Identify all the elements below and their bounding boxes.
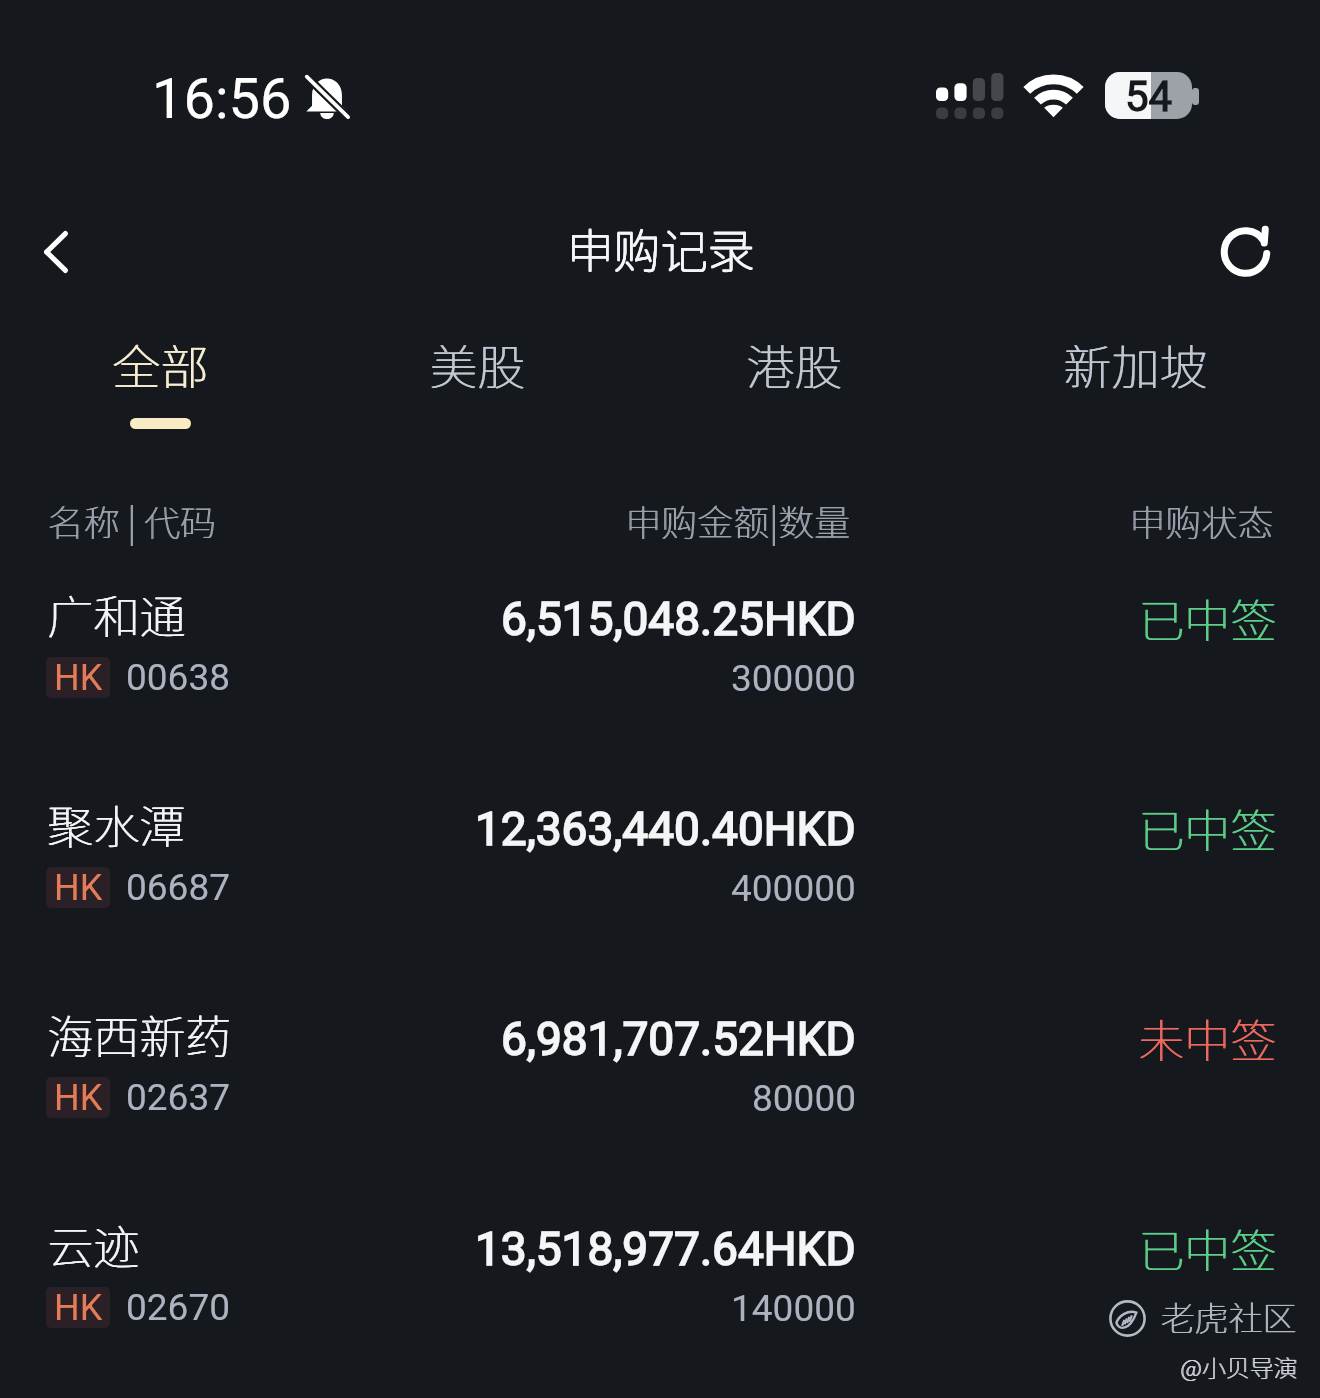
staticText: 全部 — [112, 329, 209, 399]
staticText: 80000 — [752, 1077, 856, 1120]
staticText: 6,515,048.25HKD — [501, 592, 856, 646]
staticText: 申购记录 — [566, 213, 754, 281]
staticText: 申购状态 — [1129, 494, 1274, 546]
staticText: 300000 — [731, 657, 856, 700]
staticText: 云迹 — [47, 1211, 139, 1278]
staticText: 12,363,440.40HKD — [475, 802, 856, 856]
staticText: 港股 — [746, 329, 843, 399]
button[interactable]: 美股 — [405, 323, 550, 405]
staticText: 海西新药 — [48, 1001, 232, 1068]
staticText: 已中签 — [1139, 795, 1277, 862]
staticText: HK — [54, 1077, 103, 1118]
staticText: 已中签 — [1138, 1215, 1276, 1282]
staticText: 申购金额|数量 — [625, 494, 850, 546]
staticText: 400000 — [731, 867, 856, 910]
staticText: 广和通 — [47, 581, 185, 648]
staticText: 54 — [1125, 72, 1173, 119]
staticText: 申购记录 — [567, 213, 755, 281]
staticText: 名称 | 代码 — [48, 494, 217, 546]
staticText: 新加坡 — [1064, 329, 1209, 399]
staticText: 美股 — [430, 329, 527, 399]
staticText: 聚水潭 — [48, 791, 186, 858]
staticText: 未中签 — [1139, 1005, 1277, 1072]
button[interactable]: 聚水潭 — [0, 750, 1320, 955]
staticText: 广和通 — [48, 581, 186, 648]
staticText: 6,981,707.52HKD — [501, 1012, 856, 1066]
staticText: HK — [54, 657, 103, 698]
staticText: 云迹 — [48, 1211, 140, 1278]
staticText: 未中签 — [1138, 1005, 1276, 1072]
staticText: @小贝导演 — [1181, 1349, 1299, 1384]
staticText: 已中签 — [1138, 585, 1276, 652]
staticText: 老虎社区 — [1160, 1292, 1296, 1341]
button[interactable]: Back — [11, 213, 101, 291]
staticText: 申购记录 — [566, 214, 754, 282]
staticText: 申购金额|数量 — [626, 494, 851, 546]
staticText: HK — [54, 867, 103, 908]
button[interactable]: 新加坡 — [1039, 323, 1232, 405]
button[interactable]: 云迹 — [0, 1170, 1320, 1375]
staticText: 00638 — [126, 656, 230, 699]
button[interactable]: Refresh — [1204, 213, 1294, 291]
staticText: 已中签 — [1138, 795, 1276, 862]
staticText: 海西新药 — [47, 1001, 231, 1068]
staticText: 申购状态 — [1130, 494, 1275, 546]
staticText: 港股 — [747, 329, 844, 399]
staticText: 全部 — [113, 329, 210, 399]
staticText: 申购记录 — [567, 214, 755, 282]
button[interactable]: 海西新药 — [0, 960, 1320, 1165]
staticText: 13,518,977.64HKD — [475, 1222, 856, 1276]
staticText: 02637 — [126, 1076, 230, 1119]
staticText: 老虎社区 — [1161, 1292, 1297, 1341]
staticText: 名称 | 代码 — [47, 494, 216, 546]
button[interactable]: 港股 — [722, 323, 867, 405]
staticText: 已中签 — [1139, 585, 1277, 652]
staticText: 美股 — [429, 329, 526, 399]
staticText: HK — [54, 1287, 103, 1328]
staticText: 02670 — [126, 1286, 230, 1329]
button[interactable]: 全部 — [88, 323, 233, 435]
staticText: 新加坡 — [1063, 329, 1208, 399]
button[interactable]: 广和通 — [0, 540, 1320, 745]
staticText: @小贝导演 — [1180, 1349, 1298, 1384]
staticText: 已中签 — [1139, 1215, 1277, 1282]
staticText: 140000 — [731, 1287, 856, 1330]
staticText: 06687 — [126, 866, 230, 909]
staticText: 聚水潭 — [47, 791, 185, 858]
staticText: 16:56 — [152, 66, 292, 132]
